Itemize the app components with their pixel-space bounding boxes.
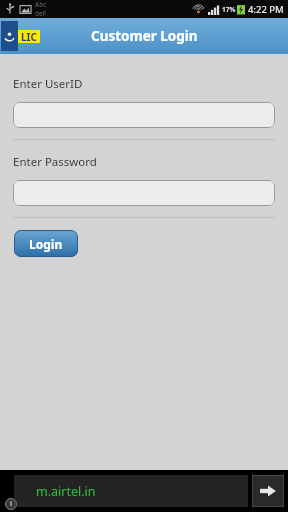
button[interactable]: Go (252, 475, 284, 507)
button[interactable]: Login (14, 230, 78, 257)
staticText: i (10, 499, 13, 509)
button[interactable]: Info (5, 498, 17, 510)
button[interactable] (13, 102, 275, 128)
staticText: Customer Login (91, 27, 198, 45)
button[interactable] (13, 180, 275, 206)
staticText: m.airtel.in (36, 483, 96, 500)
staticText: Enter Password (13, 154, 97, 170)
staticText: LIC (21, 30, 37, 43)
staticText: 17% (222, 5, 236, 14)
staticText: deF (35, 9, 47, 18)
staticText: Enter UserID (13, 76, 83, 92)
staticText: Abc (35, 0, 47, 9)
button[interactable]: m.airtel.in (14, 475, 248, 507)
staticText: 4:22 PM (248, 3, 284, 16)
staticText: Login (29, 236, 63, 252)
